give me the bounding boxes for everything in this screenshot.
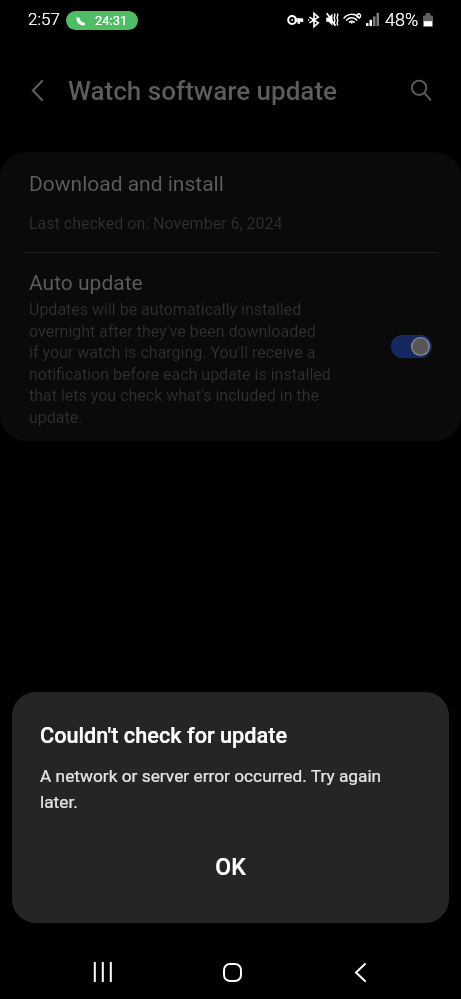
- button[interactable]: Download and install: [0, 152, 461, 252]
- staticText: 2:57: [28, 9, 60, 29]
- staticText: Last checked on: November 6, 2024: [29, 214, 283, 233]
- staticText: Updates will be automatically installed: [29, 300, 302, 319]
- staticText: Watch software update: [68, 76, 338, 106]
- staticText: update.: [29, 408, 83, 427]
- staticText: 48%: [385, 9, 419, 30]
- button[interactable]: Home: [208, 950, 256, 994]
- staticText: 24:31: [95, 13, 128, 28]
- button[interactable]: Auto update toggle, on: [391, 335, 432, 358]
- staticText: that lets you check what's included in t…: [29, 386, 319, 405]
- button[interactable]: Recent apps: [78, 950, 126, 994]
- staticText: notification before each update is insta…: [29, 365, 331, 384]
- staticText: A network or server error occurred. Try …: [40, 766, 390, 812]
- staticText: OK: [215, 854, 246, 881]
- staticText: Download and install: [29, 172, 224, 197]
- staticText: if your watch is charging. You'll receiv…: [29, 343, 316, 362]
- button[interactable]: Auto update: [0, 253, 461, 441]
- button[interactable]: Back: [336, 950, 384, 994]
- button[interactable]: OK: [12, 834, 449, 900]
- staticText: Couldn't check for update: [40, 723, 288, 748]
- button[interactable]: Search: [400, 70, 440, 110]
- button[interactable]: Navigate up: [17, 70, 57, 110]
- staticText: Auto update: [29, 271, 143, 296]
- button[interactable]: Ongoing call 24:31: [66, 11, 138, 30]
- staticText: overnight after they've been downloaded: [29, 322, 316, 341]
